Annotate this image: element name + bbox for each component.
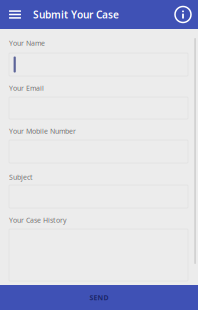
- button[interactable]: Your Name: [9, 53, 188, 76]
- button[interactable]: SEND: [0, 285, 198, 310]
- button[interactable]: Menu: [0, 0, 25, 29]
- staticText: SEND: [89, 293, 108, 302]
- staticText: Submit Your Case: [33, 8, 119, 21]
- staticText: Your Mobile Number: [9, 126, 76, 136]
- button[interactable]: Info: [175, 0, 198, 29]
- staticText: Subject: [9, 172, 33, 182]
- staticText: Your Name: [9, 38, 45, 48]
- staticText: Your Case History: [9, 215, 67, 225]
- staticText: Your Email: [9, 83, 44, 93]
